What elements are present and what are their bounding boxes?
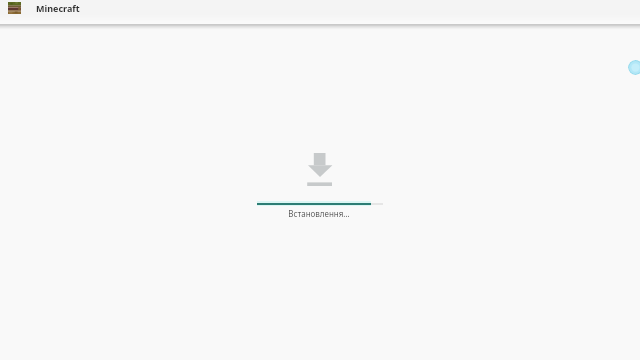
staticText: Встановлення… <box>259 208 379 219</box>
button[interactable]: Help <box>628 60 640 75</box>
other: Downloading <box>306 151 334 187</box>
button[interactable]: Minecraft <box>0 0 640 16</box>
staticText: Minecraft <box>36 2 80 14</box>
